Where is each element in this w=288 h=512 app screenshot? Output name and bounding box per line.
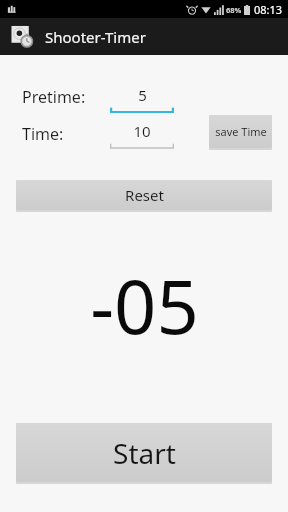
staticText: Start bbox=[113, 434, 176, 472]
staticText: Reset bbox=[125, 185, 164, 205]
staticText: Pretime: bbox=[22, 86, 86, 108]
button[interactable]: 10 bbox=[110, 119, 174, 149]
staticText: save Time bbox=[215, 124, 267, 139]
staticText: 5 bbox=[138, 85, 147, 105]
button[interactable]: save Time bbox=[209, 115, 272, 148]
button[interactable]: Reset bbox=[16, 180, 272, 210]
staticText: Shooter-Timer bbox=[45, 27, 146, 47]
staticText: Time: bbox=[22, 123, 64, 145]
staticText: 08:13 bbox=[254, 2, 283, 17]
staticText: 68% bbox=[226, 5, 242, 15]
staticText: -05 bbox=[90, 255, 199, 356]
button[interactable]: Start bbox=[16, 423, 272, 482]
staticText: 10 bbox=[133, 121, 151, 141]
button[interactable]: 5 bbox=[110, 83, 174, 113]
